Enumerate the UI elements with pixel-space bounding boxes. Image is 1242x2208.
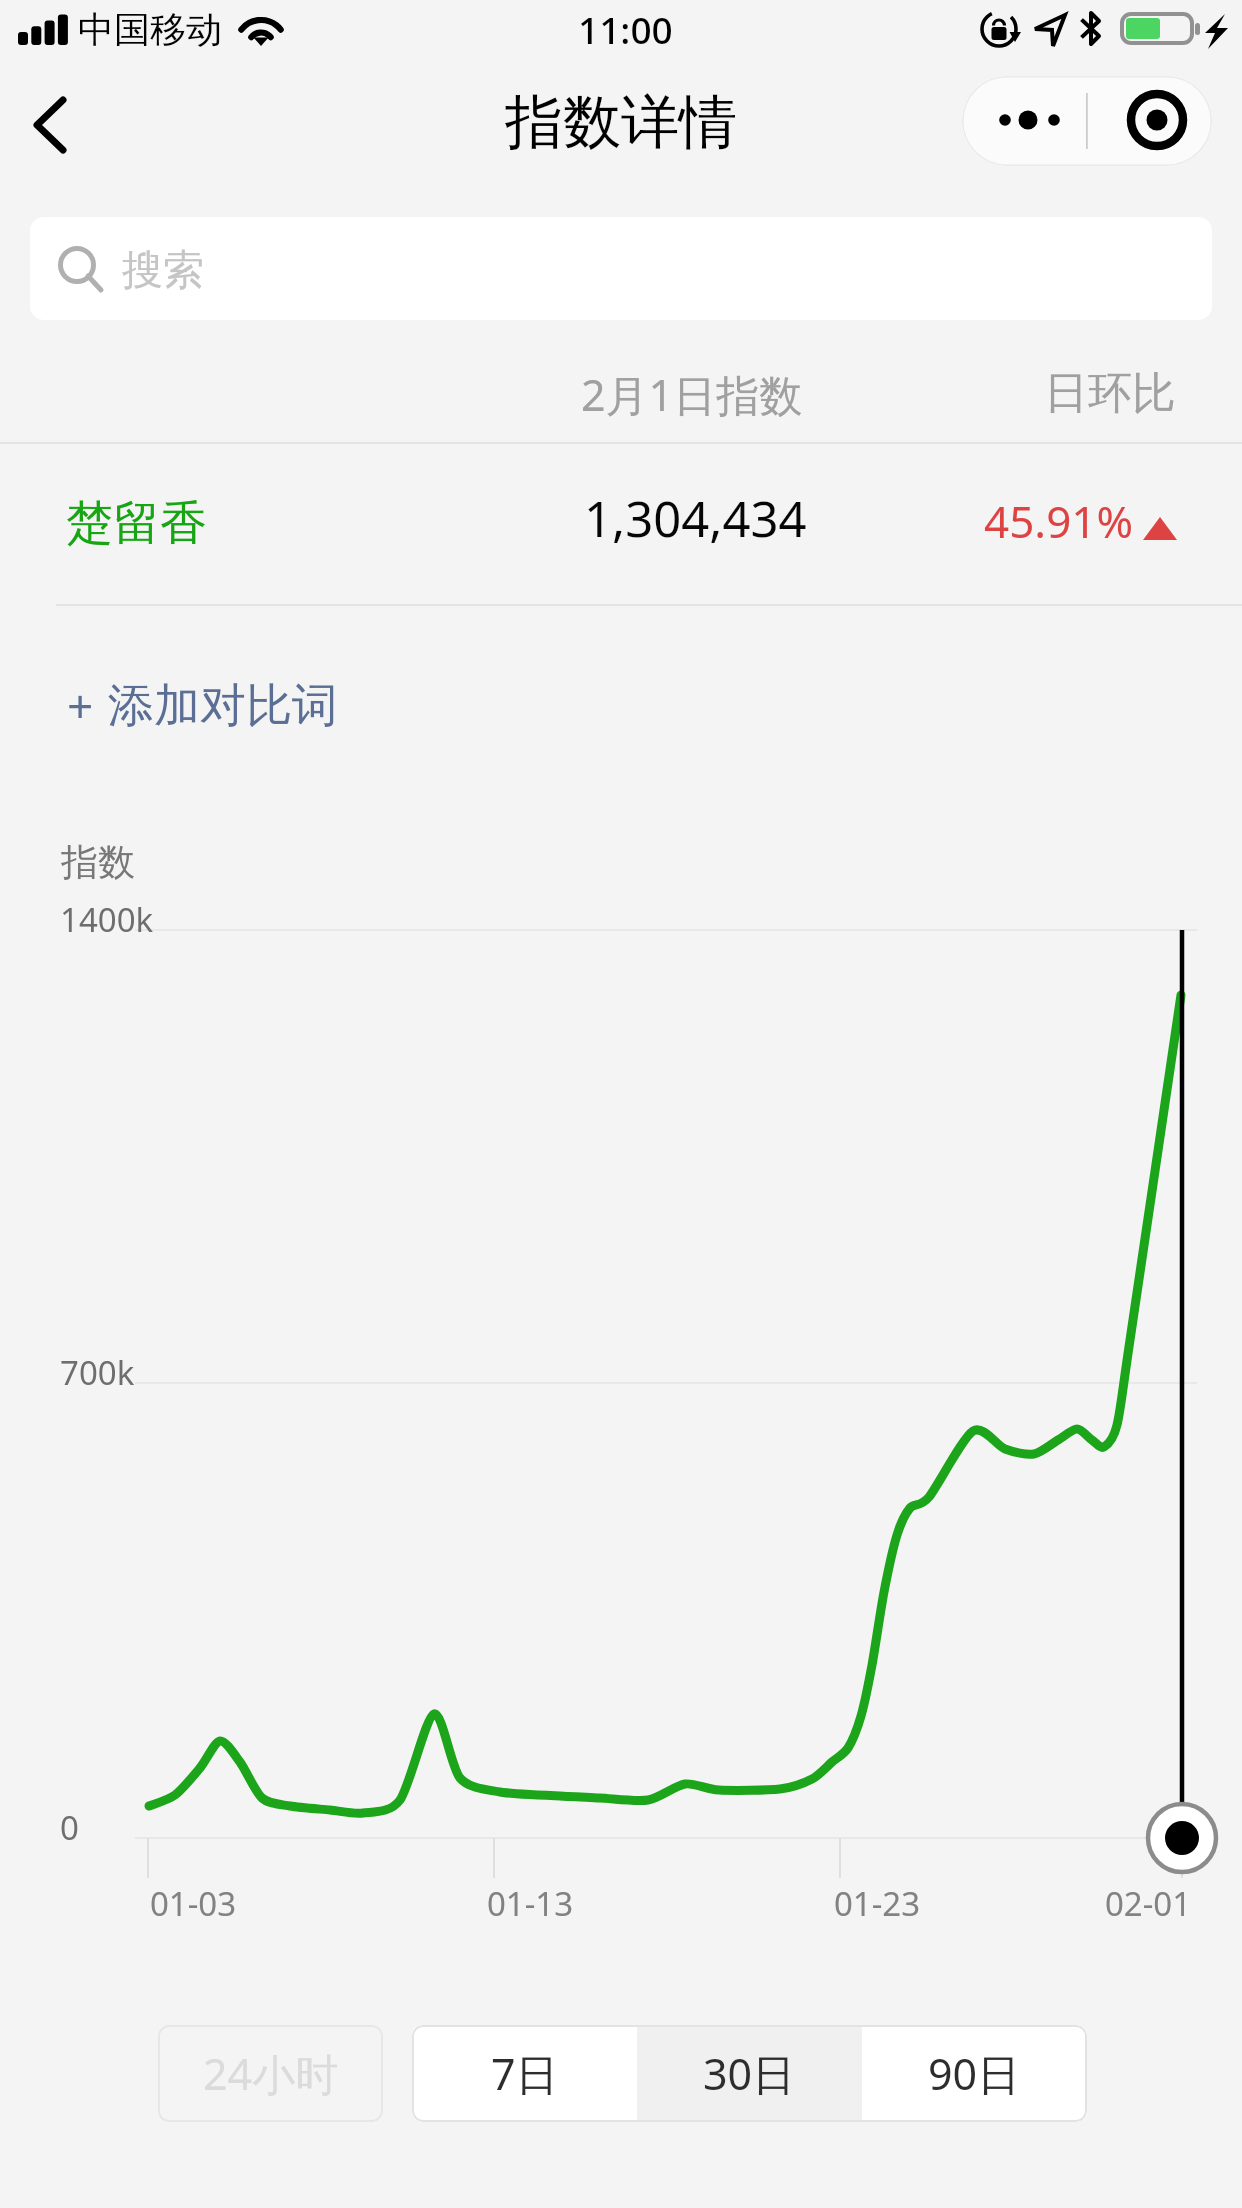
- button[interactable]: 楚留香: [0, 444, 1242, 605]
- staticText: 90日: [928, 2044, 1021, 2103]
- staticText: 700k: [60, 1350, 135, 1395]
- staticText: 添加对比词: [108, 677, 338, 735]
- staticText: 中国移动: [78, 7, 222, 52]
- button[interactable]: Back: [8, 82, 94, 168]
- button[interactable]: Search: [30, 217, 1212, 320]
- staticText: 24小时: [203, 2044, 339, 2103]
- staticText: 11:00: [578, 4, 673, 54]
- staticText: 01-23: [797, 1881, 957, 1926]
- staticText: 楚留香: [66, 494, 207, 553]
- button[interactable]: 24小时: [158, 2025, 383, 2122]
- staticText: 30日: [703, 2044, 796, 2103]
- staticText: 2月1日指数: [581, 365, 803, 424]
- button[interactable]: 7日: [412, 2025, 637, 2122]
- staticText: 45.91%: [984, 491, 1134, 551]
- button[interactable]: More options: [962, 76, 1212, 166]
- button[interactable]: +: [67, 674, 338, 737]
- staticText: 1400k: [60, 897, 154, 942]
- staticText: 01-03: [113, 1881, 273, 1926]
- button[interactable]: 90日: [862, 2025, 1087, 2122]
- staticText: 日环比: [1044, 366, 1176, 421]
- staticText: 02-01: [1068, 1881, 1228, 1926]
- staticText: 01-13: [450, 1881, 610, 1926]
- staticText: 7日: [491, 2044, 559, 2103]
- staticText: +: [67, 674, 94, 737]
- staticText: 1,304,434: [584, 485, 807, 552]
- staticText: 0: [60, 1805, 79, 1850]
- staticText: 指数: [61, 839, 135, 886]
- button[interactable]: 30日: [637, 2025, 862, 2122]
- staticText: 搜索: [122, 245, 204, 297]
- staticText: 指数详情: [505, 86, 737, 159]
